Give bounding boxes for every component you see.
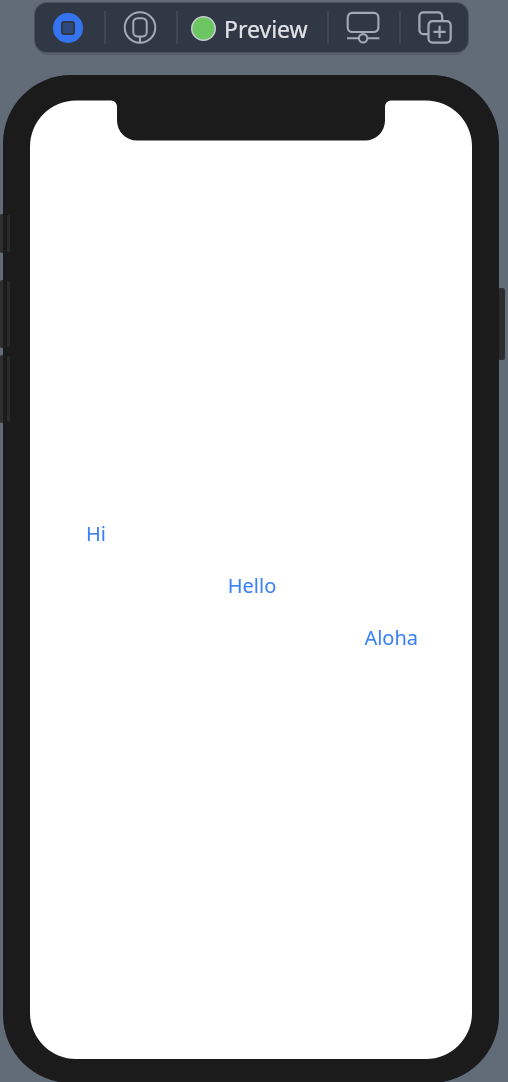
staticText: Hello (86, 572, 418, 599)
staticText: Hi (86, 520, 418, 547)
staticText: Aloha (86, 624, 418, 651)
button[interactable]: Stop (52, 12, 84, 44)
button[interactable]: Device (124, 11, 156, 43)
button[interactable]: Add preview (415, 6, 455, 46)
button[interactable]: Display settings (341, 7, 385, 45)
staticText: Preview (224, 13, 308, 44)
button[interactable]: Preview (190, 11, 308, 46)
